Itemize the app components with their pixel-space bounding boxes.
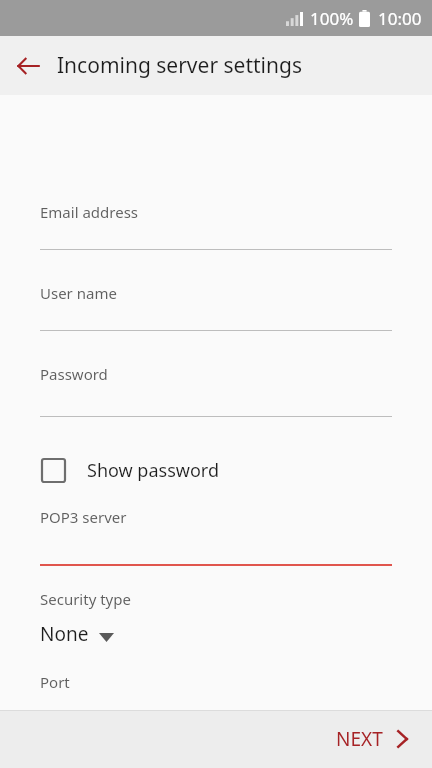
button[interactable]: Back <box>0 38 56 94</box>
staticText: Show password <box>87 458 219 483</box>
staticText: 10:00 <box>378 7 422 30</box>
staticText: Security type <box>40 589 131 609</box>
staticText: Password <box>40 364 108 384</box>
staticText: Port <box>40 672 70 692</box>
staticText: Email address <box>40 202 139 222</box>
staticText: Incoming server settings <box>57 51 302 80</box>
staticText: 100% <box>310 7 354 30</box>
button[interactable]: NEXT <box>312 710 432 768</box>
staticText: None <box>40 621 89 647</box>
staticText: User name <box>40 283 117 303</box>
button[interactable]: None <box>0 619 432 649</box>
staticText: POP3 server <box>40 507 127 527</box>
staticText: NEXT <box>336 726 383 752</box>
button[interactable]: Show password <box>0 453 432 487</box>
